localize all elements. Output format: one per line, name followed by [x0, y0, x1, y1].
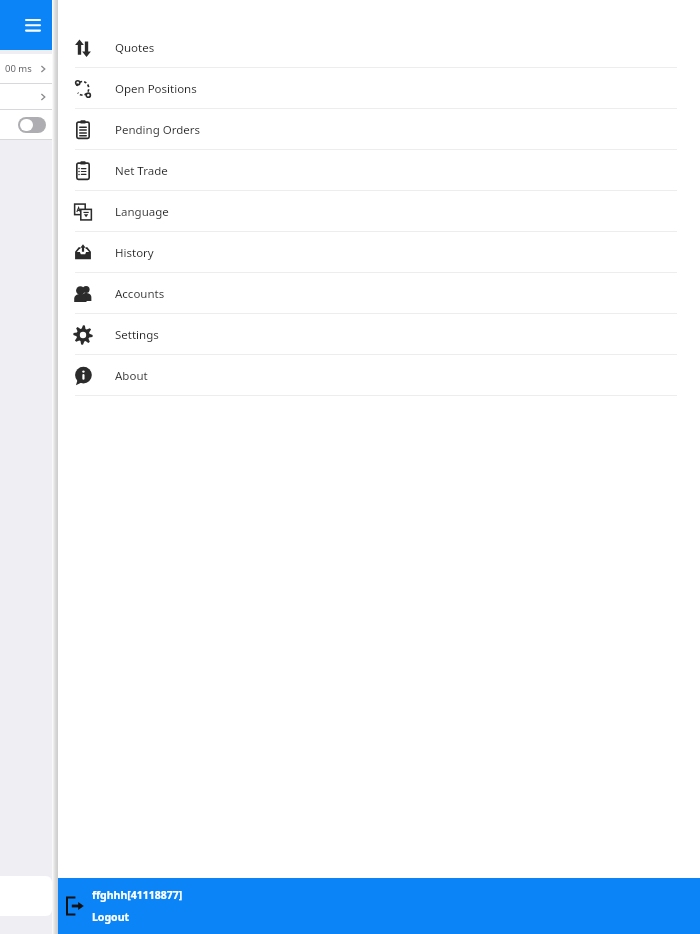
staticText: 00 ms: [5, 62, 32, 75]
staticText: About: [115, 368, 148, 384]
button[interactable]: Net Trade: [58, 150, 700, 191]
button[interactable]: 00 ms: [0, 54, 52, 83]
staticText: Accounts: [115, 286, 165, 302]
staticText: Quotes: [115, 40, 155, 56]
staticText: ffghhh[41118877]: [92, 888, 183, 902]
staticText: Open Positions: [115, 81, 197, 97]
staticText: Pending Orders: [115, 122, 201, 138]
button[interactable]: Language: [58, 191, 700, 232]
button[interactable]: [0, 110, 52, 139]
staticText: Settings: [115, 327, 159, 343]
staticText: Language: [115, 204, 169, 220]
button[interactable]: History: [58, 232, 700, 273]
button[interactable]: Accounts: [58, 273, 700, 314]
button[interactable]: Pending Orders: [58, 109, 700, 150]
button[interactable]: Quotes: [58, 27, 700, 68]
button[interactable]: Open navigation menu: [22, 14, 44, 36]
staticText: History: [115, 245, 154, 261]
button[interactable]: Settings: [58, 314, 700, 355]
button[interactable]: Open Positions: [58, 68, 700, 109]
button[interactable]: ffghhh[41118877]: [58, 878, 700, 934]
staticText: Logout: [92, 910, 130, 924]
button[interactable]: [0, 84, 52, 109]
staticText: Net Trade: [115, 163, 168, 179]
button[interactable]: About: [58, 355, 700, 396]
